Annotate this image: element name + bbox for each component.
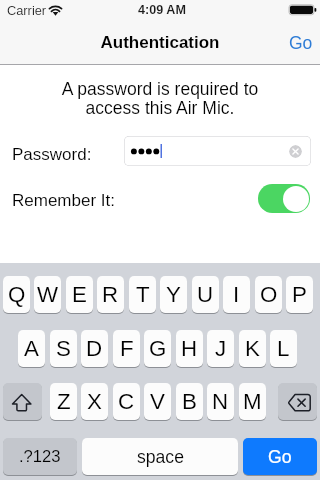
button[interactable]: U bbox=[192, 276, 219, 313]
staticText: D bbox=[86, 336, 103, 361]
staticText: space bbox=[137, 447, 184, 467]
button[interactable]: K bbox=[239, 330, 266, 367]
button[interactable]: L bbox=[270, 330, 297, 367]
button[interactable]: Shift bbox=[3, 383, 42, 420]
button[interactable]: J bbox=[207, 330, 234, 367]
button[interactable]: Z bbox=[50, 383, 77, 420]
staticText: Z bbox=[57, 389, 71, 414]
staticText: G bbox=[149, 336, 167, 361]
staticText: 4:09 AM bbox=[2, 3, 320, 17]
staticText: O bbox=[260, 282, 278, 307]
button[interactable]: W bbox=[34, 276, 61, 313]
button[interactable]: X bbox=[81, 383, 108, 420]
button[interactable]: G bbox=[144, 330, 171, 367]
staticText: X bbox=[87, 389, 102, 414]
staticText: Go bbox=[289, 33, 313, 53]
button[interactable]: Password: bbox=[12, 145, 92, 164]
staticText: T bbox=[136, 282, 150, 307]
staticText: L bbox=[277, 336, 290, 361]
staticText: M bbox=[243, 389, 262, 414]
button[interactable]: Password field bbox=[124, 136, 311, 166]
button[interactable]: Y bbox=[160, 276, 187, 313]
staticText: H bbox=[181, 336, 198, 361]
button[interactable]: Go bbox=[279, 21, 320, 63]
staticText: Y bbox=[166, 282, 181, 307]
button[interactable]: H bbox=[176, 330, 203, 367]
button[interactable]: D bbox=[81, 330, 108, 367]
staticText: A password is required to access this Ai… bbox=[0, 79, 320, 118]
staticText: .?123 bbox=[19, 447, 61, 466]
staticText: F bbox=[120, 336, 134, 361]
staticText: A bbox=[24, 336, 39, 361]
button[interactable]: Remember It: bbox=[12, 191, 115, 210]
staticText: I bbox=[233, 282, 240, 307]
button[interactable]: Go bbox=[243, 438, 317, 475]
staticText: E bbox=[72, 282, 87, 307]
button[interactable]: T bbox=[129, 276, 156, 313]
button[interactable]: V bbox=[144, 383, 171, 420]
button[interactable]: E bbox=[66, 276, 93, 313]
staticText: S bbox=[56, 336, 71, 361]
staticText: J bbox=[215, 336, 227, 361]
staticText: Q bbox=[8, 282, 26, 307]
button[interactable]: A bbox=[18, 330, 45, 367]
button[interactable]: Backspace bbox=[278, 383, 317, 420]
button[interactable]: M bbox=[239, 383, 266, 420]
button[interactable]: Clear text bbox=[289, 145, 302, 158]
button[interactable]: P bbox=[286, 276, 313, 313]
staticText: W bbox=[37, 282, 59, 307]
button[interactable]: R bbox=[97, 276, 124, 313]
button[interactable]: space bbox=[82, 438, 238, 475]
staticText: U bbox=[197, 282, 214, 307]
staticText: Carrier bbox=[7, 3, 47, 17]
button[interactable]: I bbox=[223, 276, 250, 313]
button[interactable]: N bbox=[207, 383, 234, 420]
staticText: P bbox=[292, 282, 307, 307]
staticText: B bbox=[182, 389, 197, 414]
button[interactable]: C bbox=[113, 383, 140, 420]
button[interactable]: B bbox=[176, 383, 203, 420]
staticText: K bbox=[245, 336, 260, 361]
staticText: Authentication bbox=[0, 33, 320, 52]
button[interactable]: .?123 bbox=[3, 438, 77, 475]
staticText: V bbox=[150, 389, 165, 414]
button[interactable]: F bbox=[113, 330, 140, 367]
button[interactable]: S bbox=[50, 330, 77, 367]
button[interactable]: Q bbox=[3, 276, 30, 313]
staticText: N bbox=[212, 389, 229, 414]
button[interactable]: Remember It toggle, on bbox=[258, 184, 310, 213]
staticText: C bbox=[118, 389, 135, 414]
staticText: R bbox=[102, 282, 119, 307]
button[interactable]: O bbox=[255, 276, 282, 313]
staticText: Go bbox=[268, 447, 292, 467]
